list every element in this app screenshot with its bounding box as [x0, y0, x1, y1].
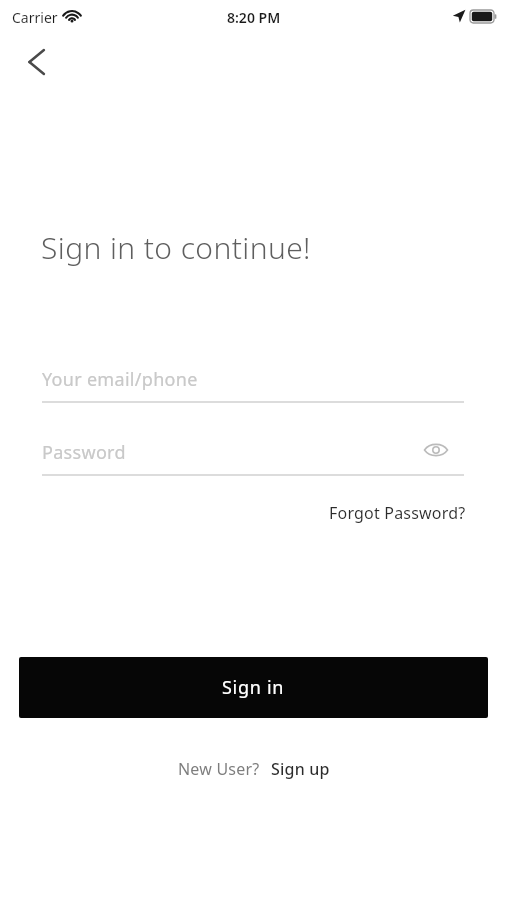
staticText: Carrier [12, 8, 58, 27]
staticText: Sign up [271, 758, 330, 780]
button[interactable]: Your email/phone [42, 356, 464, 402]
button[interactable]: Back [12, 39, 58, 85]
staticText: Forgot Password? [329, 502, 466, 524]
staticText: Sign in to continue! [41, 227, 311, 268]
staticText: Password [42, 440, 126, 465]
staticText: Your email/phone [42, 367, 198, 392]
button[interactable]: Forgot Password? [329, 502, 466, 524]
button[interactable]: Sign up [271, 758, 330, 780]
staticText: New User? [178, 758, 260, 780]
button[interactable]: Show password [419, 433, 453, 467]
staticText: 8:20 PM [227, 8, 281, 27]
staticText: Sign in [222, 675, 285, 700]
button[interactable]: Password [42, 429, 422, 475]
button[interactable]: Sign in [19, 657, 488, 718]
